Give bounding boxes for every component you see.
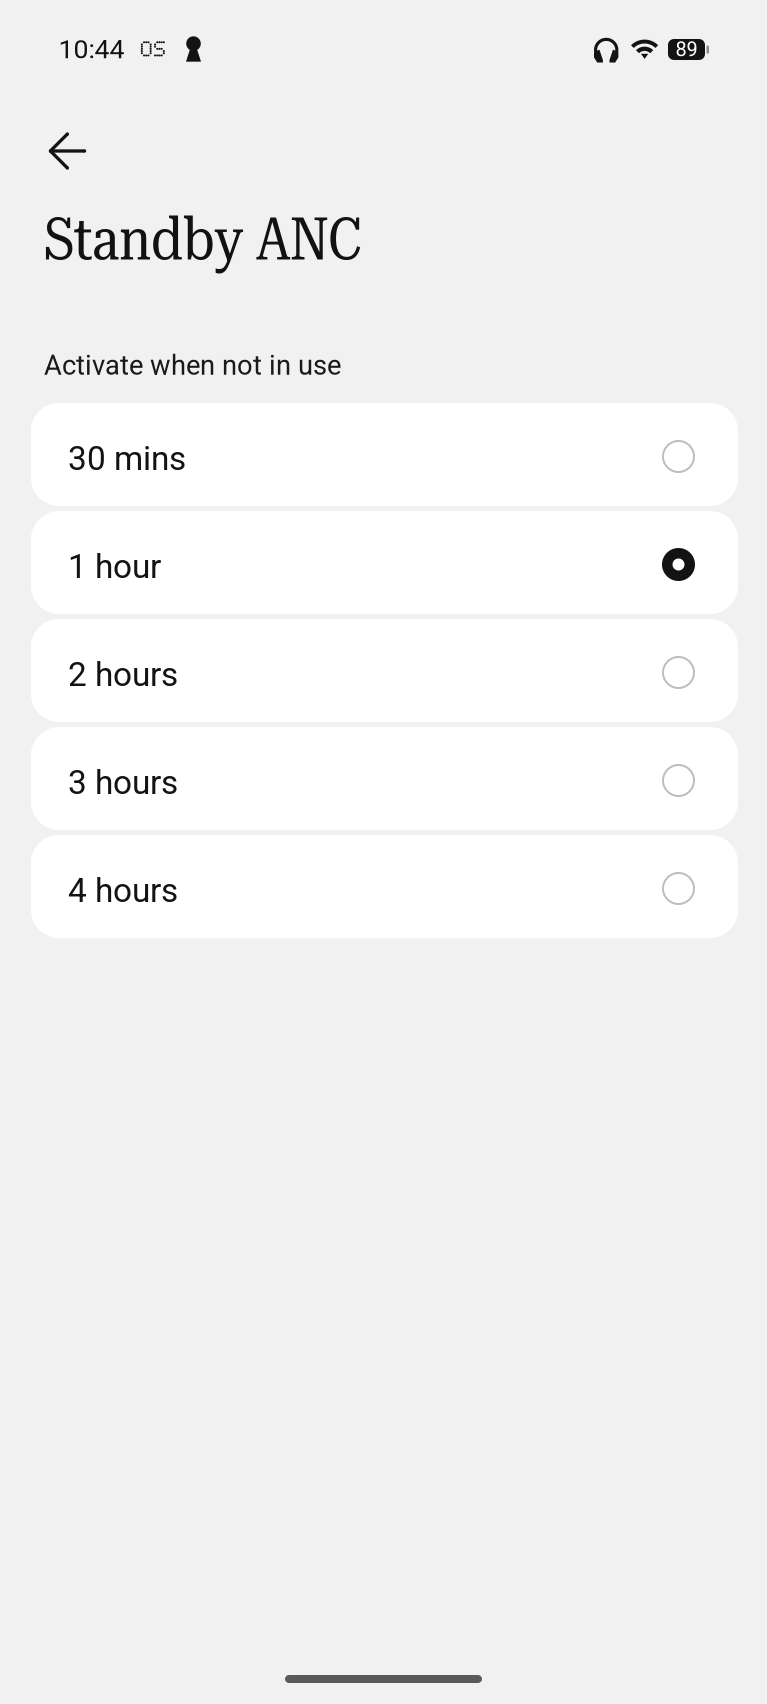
button[interactable]: 30 mins (31, 403, 738, 506)
button[interactable]: Back (0, 118, 108, 184)
staticText: 30 mins (68, 439, 186, 478)
staticText: 1 hour (68, 547, 161, 586)
staticText: 3 hours (68, 763, 178, 802)
button[interactable]: 2 hours (31, 619, 738, 722)
staticText: 10:44 (58, 33, 124, 65)
button[interactable]: 1 hour (31, 511, 738, 614)
staticText: 2 hours (68, 655, 178, 694)
button[interactable]: 4 hours (31, 835, 738, 938)
staticText: Activate when not in use (44, 349, 341, 381)
staticText: Standby ANC (44, 205, 362, 274)
staticText: 89 (675, 38, 697, 61)
staticText: 4 hours (68, 871, 178, 910)
button[interactable]: 3 hours (31, 727, 738, 830)
